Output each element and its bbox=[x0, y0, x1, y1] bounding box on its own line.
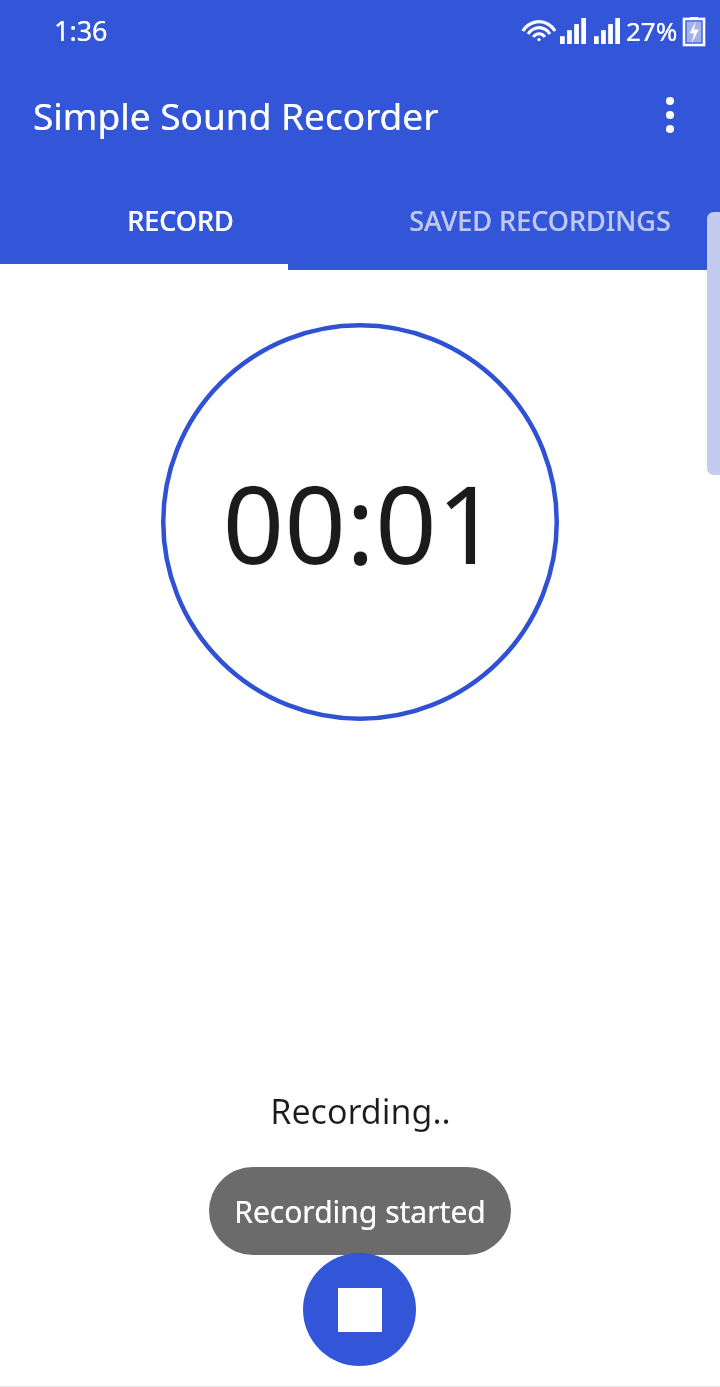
button[interactable]: More options bbox=[642, 87, 698, 143]
staticText: SAVED RECORDINGS bbox=[409, 202, 671, 239]
button[interactable]: SAVED RECORDINGS bbox=[360, 170, 720, 270]
staticText: Recording started bbox=[234, 1191, 486, 1232]
staticText: RECORD bbox=[127, 202, 234, 239]
button[interactable]: Stop recording bbox=[303, 1253, 416, 1366]
staticText: 00:01 bbox=[222, 449, 499, 596]
staticText: 1:36 bbox=[54, 12, 108, 49]
staticText: Simple Sound Recorder bbox=[33, 90, 439, 140]
staticText: 27% bbox=[626, 13, 678, 48]
staticText: Recording.. bbox=[270, 1088, 451, 1134]
button[interactable]: RECORD bbox=[0, 170, 360, 270]
